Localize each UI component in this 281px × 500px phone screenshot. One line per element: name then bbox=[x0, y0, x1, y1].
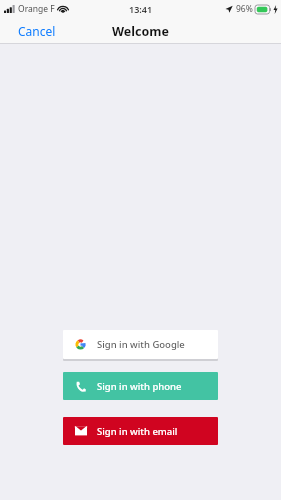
staticText: Sign in with Google bbox=[97, 338, 185, 351]
staticText: Sign in with phone bbox=[97, 380, 182, 393]
staticText: Orange F bbox=[18, 3, 55, 15]
staticText: 13:41 bbox=[129, 3, 153, 15]
button[interactable]: Sign in with Google bbox=[63, 330, 218, 359]
staticText: Sign in with email bbox=[97, 425, 178, 438]
staticText: 96% bbox=[236, 3, 253, 15]
button[interactable]: Sign in with phone bbox=[63, 372, 218, 400]
staticText: Welcome bbox=[112, 23, 169, 40]
staticText: Cancel bbox=[18, 23, 56, 39]
button[interactable]: Cancel bbox=[0, 19, 74, 43]
button[interactable]: Sign in with email bbox=[63, 417, 218, 445]
